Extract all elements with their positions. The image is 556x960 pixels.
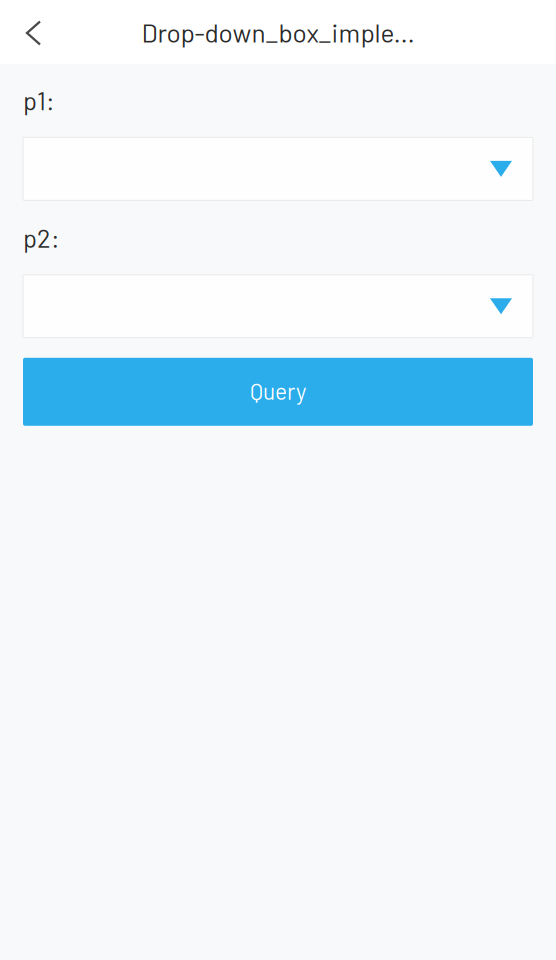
staticText: Drop-down_box_imple... <box>141 16 414 48</box>
button[interactable]: Query <box>23 358 533 426</box>
staticText: Query <box>250 377 306 404</box>
button[interactable]: Back <box>0 1 60 62</box>
button[interactable]: p1 drop-down <box>23 137 533 200</box>
staticText: p2: <box>23 222 60 253</box>
button[interactable]: p2 drop-down <box>23 275 533 338</box>
staticText: p1: <box>23 85 55 115</box>
